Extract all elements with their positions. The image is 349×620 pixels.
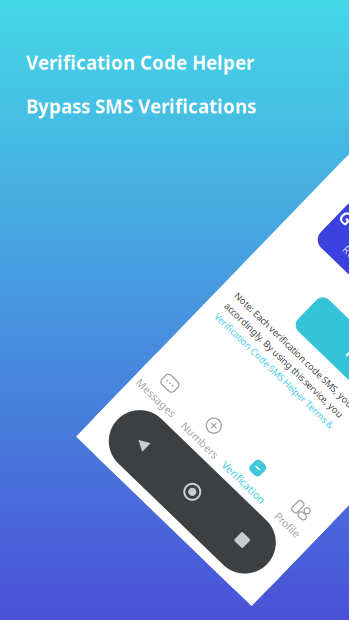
button[interactable]: Back [205,533,274,545]
staticText: Get a Verification Code [223,223,349,246]
staticText: accordingly. By using this service, you [203,374,349,387]
button[interactable]: Home [274,531,344,547]
button[interactable]: Numbers [248,469,309,503]
staticText: Next [322,316,349,339]
button[interactable]: Next [265,306,349,350]
staticText: Note: Each verification code SMS, you [203,360,349,372]
staticText: Numbers [255,489,302,504]
button[interactable]: Messages [187,469,248,503]
staticText: Receive SMS online instantly [248,250,349,265]
staticText: Verification Code SMS Helper Terms & [203,389,349,401]
staticText: Messages [192,489,242,504]
button[interactable]: Get a Verification Code [221,214,349,274]
staticText: Verification Code Helper [26,50,254,75]
staticText: Bypass SMS Verifications [26,94,256,119]
